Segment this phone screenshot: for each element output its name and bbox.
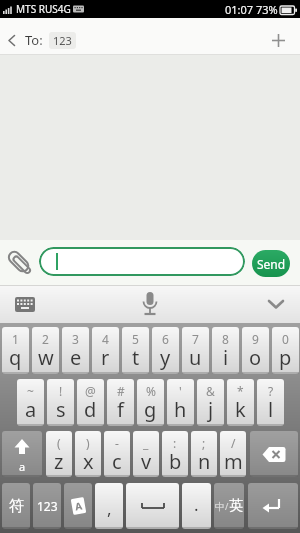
staticText: To:: [25, 31, 43, 49]
button[interactable]: 123: [33, 483, 61, 529]
button[interactable]: ~: [17, 379, 44, 426]
button[interactable]: [126, 483, 179, 529]
staticText: 1: [12, 331, 19, 347]
button[interactable]: Send: [252, 250, 290, 277]
staticText: 中: [215, 500, 225, 513]
button[interactable]: :: [162, 431, 188, 477]
staticText: 9: [252, 331, 259, 347]
staticText: 英: [229, 497, 243, 515]
staticText: u: [189, 344, 202, 371]
staticText: ,: [107, 497, 112, 520]
staticText: s: [56, 396, 66, 423]
button[interactable]: _: [133, 431, 159, 477]
button[interactable]: 2: [32, 327, 59, 374]
staticText: b: [169, 448, 182, 475]
staticText: 4: [102, 331, 109, 347]
button[interactable]: [248, 483, 298, 529]
button[interactable]: *: [227, 379, 254, 426]
staticText: t: [132, 344, 140, 371]
staticText: r: [101, 344, 110, 371]
button[interactable]: [264, 25, 292, 55]
staticText: 6: [162, 331, 169, 347]
button[interactable]: ': [167, 379, 194, 426]
button[interactable]: 123: [53, 33, 72, 48]
staticText: ~: [27, 383, 34, 399]
button[interactable]: %: [137, 379, 164, 426]
staticText: 123: [37, 498, 58, 514]
button[interactable]: ,: [95, 483, 123, 529]
staticText: _: [143, 435, 149, 451]
staticText: 01:07 73%: [225, 2, 278, 17]
staticText: 8: [222, 331, 229, 347]
staticText: 123: [53, 33, 72, 48]
button[interactable]: [133, 287, 167, 321]
staticText: i: [223, 344, 229, 371]
staticText: ?: [268, 383, 274, 399]
button[interactable]: 8: [212, 327, 239, 374]
staticText: x: [83, 448, 94, 475]
staticText: %: [146, 383, 156, 399]
staticText: w: [38, 344, 54, 371]
button[interactable]: a: [2, 431, 42, 477]
staticText: l: [268, 396, 274, 423]
staticText: k: [235, 396, 246, 423]
button[interactable]: ): [75, 431, 101, 477]
button[interactable]: 7: [182, 327, 209, 374]
button[interactable]: ?: [257, 379, 284, 426]
staticText: 5: [132, 331, 139, 347]
button[interactable]: [262, 289, 290, 319]
button[interactable]: .: [182, 483, 211, 529]
staticText: -: [115, 435, 119, 451]
staticText: 2: [42, 331, 49, 347]
staticText: ;: [202, 435, 206, 451]
staticText: n: [198, 448, 211, 475]
button[interactable]: /: [220, 431, 246, 477]
button[interactable]: 1: [2, 327, 29, 374]
button[interactable]: A: [64, 483, 92, 529]
staticText: c: [112, 448, 122, 475]
button[interactable]: -: [104, 431, 130, 477]
button[interactable]: #: [107, 379, 134, 426]
staticText: (: [57, 435, 61, 451]
staticText: 3: [72, 331, 79, 347]
staticText: .: [194, 493, 199, 516]
button[interactable]: 6: [152, 327, 179, 374]
staticText: @: [85, 383, 96, 399]
button[interactable]: 4: [92, 327, 119, 374]
staticText: m: [224, 448, 243, 475]
staticText: ': [179, 383, 182, 399]
staticText: /: [225, 500, 229, 512]
staticText: e: [70, 344, 82, 371]
staticText: Send: [257, 256, 286, 272]
button[interactable]: 9: [242, 327, 269, 374]
button[interactable]: ;: [191, 431, 217, 477]
staticText: p: [279, 344, 292, 371]
button[interactable]: @: [77, 379, 104, 426]
button[interactable]: 符: [2, 483, 30, 529]
staticText: y: [160, 344, 171, 371]
button[interactable]: 5: [122, 327, 149, 374]
staticText: ): [86, 435, 90, 451]
staticText: q: [9, 344, 22, 371]
staticText: #: [117, 383, 125, 399]
button[interactable]: 0: [272, 327, 299, 374]
button[interactable]: 中: [214, 483, 244, 529]
button[interactable]: [0, 25, 24, 55]
button[interactable]: (: [46, 431, 72, 477]
staticText: v: [141, 448, 152, 475]
staticText: /: [231, 435, 236, 451]
staticText: g: [144, 396, 157, 423]
staticText: a: [19, 459, 26, 474]
button[interactable]: &: [197, 379, 224, 426]
staticText: 0: [282, 331, 289, 347]
button[interactable]: [39, 247, 245, 276]
button[interactable]: [8, 289, 42, 319]
staticText: &: [206, 383, 215, 399]
staticText: 符: [9, 497, 24, 516]
staticText: *: [237, 383, 244, 399]
button[interactable]: [250, 431, 298, 477]
button[interactable]: 3: [62, 327, 89, 374]
staticText: h: [174, 396, 187, 423]
staticText: :: [173, 435, 177, 451]
button[interactable]: !: [47, 379, 74, 426]
